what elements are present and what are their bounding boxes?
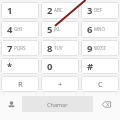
staticText: TUV xyxy=(54,45,63,51)
button[interactable]: 7 xyxy=(1,40,39,56)
staticText: * xyxy=(7,60,13,73)
button[interactable]: 5 xyxy=(41,21,79,38)
button[interactable]: 0 xyxy=(41,58,79,74)
staticText: DEF xyxy=(94,7,103,13)
button[interactable]: 9 xyxy=(81,40,119,56)
button[interactable]: 3 xyxy=(81,2,119,19)
staticText: GHI xyxy=(14,26,23,32)
staticText: 4 xyxy=(7,23,13,36)
button[interactable]: # xyxy=(81,58,119,74)
staticText: Chamar xyxy=(47,101,68,108)
button[interactable]: 6 xyxy=(81,21,119,38)
button[interactable]: 1 xyxy=(1,2,39,19)
button[interactable]: R xyxy=(1,76,39,92)
staticText: 9 xyxy=(87,42,93,55)
staticText: 8 xyxy=(47,42,53,55)
button[interactable]: + xyxy=(41,76,79,92)
staticText: ABC xyxy=(54,7,63,13)
button[interactable]: Chamar xyxy=(22,96,93,112)
staticText: JKL xyxy=(54,26,61,32)
staticText: MNO xyxy=(94,26,106,32)
button[interactable]: Backspace xyxy=(93,96,120,112)
staticText: # xyxy=(87,60,94,73)
staticText: 6 xyxy=(87,23,93,36)
staticText: 3 xyxy=(87,4,93,17)
button[interactable]: 8 xyxy=(41,40,79,56)
staticText: 1 xyxy=(7,4,13,17)
button[interactable]: 4 xyxy=(1,21,39,38)
staticText: 2 xyxy=(47,4,53,17)
staticText: WXYZ xyxy=(94,45,106,51)
staticText: 7 xyxy=(7,42,13,55)
staticText: 0 xyxy=(47,60,53,73)
staticText: C xyxy=(98,79,103,89)
staticText: PQRS xyxy=(14,45,26,51)
button[interactable]: * xyxy=(1,58,39,74)
staticText: R xyxy=(18,79,23,89)
button[interactable]: Contacts xyxy=(0,96,22,112)
staticText: + xyxy=(58,79,63,89)
button[interactable]: C xyxy=(81,76,119,92)
button[interactable]: 2 xyxy=(41,2,79,19)
staticText: 5 xyxy=(47,23,53,36)
